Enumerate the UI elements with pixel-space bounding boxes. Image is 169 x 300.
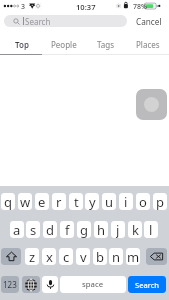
staticText: Top xyxy=(15,39,29,50)
button[interactable]: Tags xyxy=(85,34,127,54)
staticText: h xyxy=(97,221,106,238)
button[interactable]: a xyxy=(10,221,24,238)
button[interactable]: Search xyxy=(4,15,127,27)
staticText: q xyxy=(4,193,12,210)
staticText: r xyxy=(56,193,62,210)
staticText: i xyxy=(124,193,128,210)
staticText: 78% xyxy=(133,2,147,12)
button[interactable]: i xyxy=(119,193,133,210)
button[interactable]: k xyxy=(128,221,142,238)
staticText: p xyxy=(156,193,164,210)
button[interactable]: d xyxy=(43,221,57,238)
button[interactable]: e xyxy=(35,193,49,210)
staticText: space xyxy=(82,279,104,290)
staticText: Places xyxy=(136,39,160,50)
button[interactable]: space xyxy=(60,276,126,293)
staticText: g xyxy=(80,221,88,238)
button[interactable]: r xyxy=(52,193,66,210)
button[interactable]: o xyxy=(136,193,150,210)
staticText: 10:37 xyxy=(76,2,96,12)
button[interactable]: v xyxy=(76,248,90,265)
staticText: l xyxy=(149,221,153,238)
button[interactable]: q xyxy=(1,193,15,210)
button[interactable]: Search xyxy=(128,276,166,293)
staticText: m xyxy=(127,248,140,265)
button[interactable]: h xyxy=(94,221,108,238)
button[interactable]: x xyxy=(42,248,56,265)
button[interactable]: 123 xyxy=(1,276,19,293)
staticText: c xyxy=(63,248,70,265)
button[interactable]: j xyxy=(111,221,125,238)
staticText: a xyxy=(13,221,21,238)
staticText: j xyxy=(116,221,120,238)
button[interactable]: w xyxy=(18,193,32,210)
button[interactable]: c xyxy=(59,248,73,265)
staticText: 123 xyxy=(3,279,17,290)
button[interactable]: u xyxy=(102,193,116,210)
staticText: v xyxy=(80,248,87,265)
staticText: d xyxy=(46,221,54,238)
staticText: Search xyxy=(135,280,160,290)
button[interactable]: n xyxy=(109,248,123,265)
button[interactable]: y xyxy=(85,193,99,210)
button[interactable]: s xyxy=(26,221,40,238)
button[interactable]: Places xyxy=(127,34,169,54)
staticText: e xyxy=(38,193,46,210)
button[interactable]: Change keyboard xyxy=(22,276,40,293)
button[interactable]: p xyxy=(153,193,167,210)
button[interactable]: b xyxy=(93,248,107,265)
staticText: Cancel xyxy=(136,16,162,27)
button[interactable]: z xyxy=(25,248,39,265)
staticText: t xyxy=(74,193,79,210)
staticText: k xyxy=(132,221,139,238)
staticText: People xyxy=(51,39,77,50)
staticText: f xyxy=(65,221,70,238)
button[interactable]: l xyxy=(144,221,158,238)
staticText: Tags xyxy=(97,39,115,50)
button[interactable]: Shift xyxy=(1,248,21,265)
staticText: n xyxy=(112,248,121,265)
staticText: b xyxy=(96,248,104,265)
button[interactable]: m xyxy=(126,248,140,265)
staticText: 3 xyxy=(21,2,26,12)
staticText: s xyxy=(30,221,37,238)
staticText: y xyxy=(89,193,96,210)
staticText: Search xyxy=(25,16,51,27)
staticText: w xyxy=(20,193,31,210)
button[interactable]: g xyxy=(77,221,91,238)
staticText: o xyxy=(139,193,147,210)
button[interactable]: t xyxy=(69,193,83,210)
button[interactable]: Cancel xyxy=(131,13,167,29)
staticText: z xyxy=(29,248,36,265)
staticText: x xyxy=(46,248,53,265)
button[interactable]: People xyxy=(43,34,85,54)
button[interactable]: Top xyxy=(0,34,43,54)
button[interactable]: Dictate xyxy=(42,276,58,293)
staticText: u xyxy=(105,193,114,210)
button[interactable]: Backspace xyxy=(146,248,167,265)
button[interactable]: f xyxy=(60,221,74,238)
